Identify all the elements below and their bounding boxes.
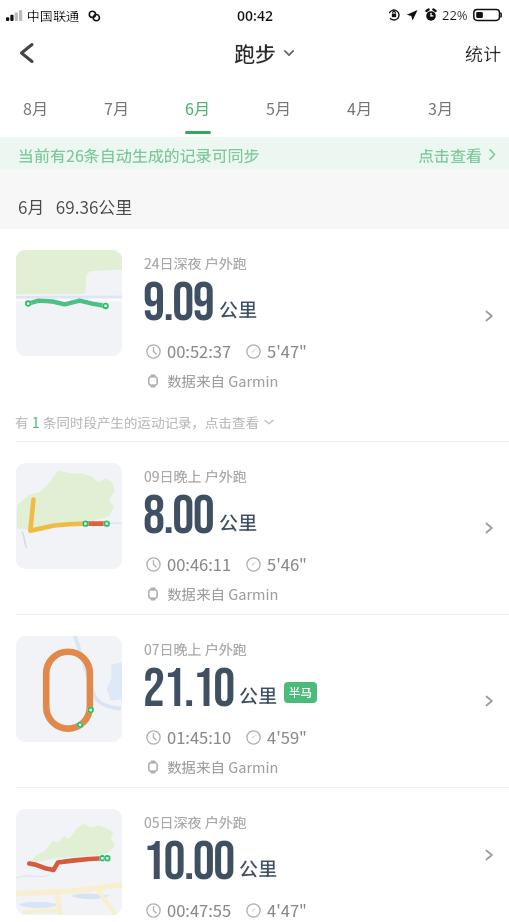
button[interactable]: Back: [4, 31, 48, 75]
staticText: 数据来自 Garmin: [167, 756, 279, 777]
button[interactable]: 07日晚上 户外跑: [0, 615, 509, 788]
staticText: 条同时段产生的运动记录，点击查看: [40, 412, 260, 432]
staticText: 10.00: [143, 829, 234, 895]
staticText: 07日晚上 户外跑: [144, 639, 247, 659]
staticText: 中国联通: [27, 6, 80, 25]
staticText: 6月: [185, 96, 210, 119]
staticText: 有: [15, 412, 32, 432]
staticText: 21.10: [143, 656, 234, 722]
staticText: 22%: [442, 6, 468, 24]
button[interactable]: 统计: [451, 30, 509, 76]
staticText: 数据来自 Garmin: [167, 370, 279, 391]
staticText: 当前有26条自动生成的记录可同步: [18, 143, 260, 166]
staticText: 公里: [219, 295, 258, 323]
staticText: 半马: [289, 684, 312, 701]
button[interactable]: 8月: [0, 83, 76, 137]
staticText: 9.09: [143, 270, 214, 336]
button[interactable]: 6月: [157, 83, 238, 137]
staticText: 05日深夜 户外跑: [144, 812, 247, 832]
staticText: 01:45:10: [167, 725, 232, 749]
staticText: 公里: [239, 681, 278, 709]
staticText: 跑步: [234, 38, 276, 68]
button[interactable]: 当前有26条自动生成的记录可同步: [0, 137, 509, 169]
staticText: 数据来自 Garmin: [167, 583, 279, 604]
staticText: 公里: [239, 854, 278, 882]
staticText: 公里: [219, 508, 258, 536]
staticText: 5'47": [267, 339, 307, 363]
staticText: 8月: [23, 96, 48, 119]
staticText: 点击查看: [418, 143, 483, 166]
button[interactable]: 5月: [238, 83, 319, 137]
button[interactable]: 24日深夜 户外跑: [0, 229, 509, 403]
button[interactable]: 4月: [319, 83, 400, 137]
staticText: 统计: [465, 40, 501, 66]
staticText: 7月: [104, 96, 129, 119]
button[interactable]: 09日晚上 户外跑: [0, 442, 509, 615]
staticText: 00:52:37: [167, 339, 232, 363]
staticText: 6月 69.36公里: [18, 194, 133, 219]
button[interactable]: 有: [0, 403, 509, 441]
button[interactable]: 05日深夜 户外跑: [0, 788, 509, 922]
staticText: 5'46": [267, 552, 307, 576]
button[interactable]: 7月: [76, 83, 157, 137]
staticText: 00:47:55: [167, 898, 232, 922]
button[interactable]: 跑步: [228, 32, 300, 74]
button[interactable]: 3月: [400, 83, 481, 137]
staticText: 1: [32, 412, 40, 432]
staticText: 4'59": [267, 725, 307, 749]
staticText: 00:46:11: [167, 552, 232, 576]
staticText: 8.00: [143, 483, 214, 549]
staticText: 4'47": [267, 898, 307, 922]
staticText: 5月: [266, 96, 291, 119]
staticText: 24日深夜 户外跑: [144, 253, 247, 273]
staticText: 00:42: [237, 6, 273, 25]
staticText: 09日晚上 户外跑: [144, 466, 247, 486]
staticText: 4月: [347, 96, 372, 119]
staticText: 3月: [428, 96, 453, 119]
